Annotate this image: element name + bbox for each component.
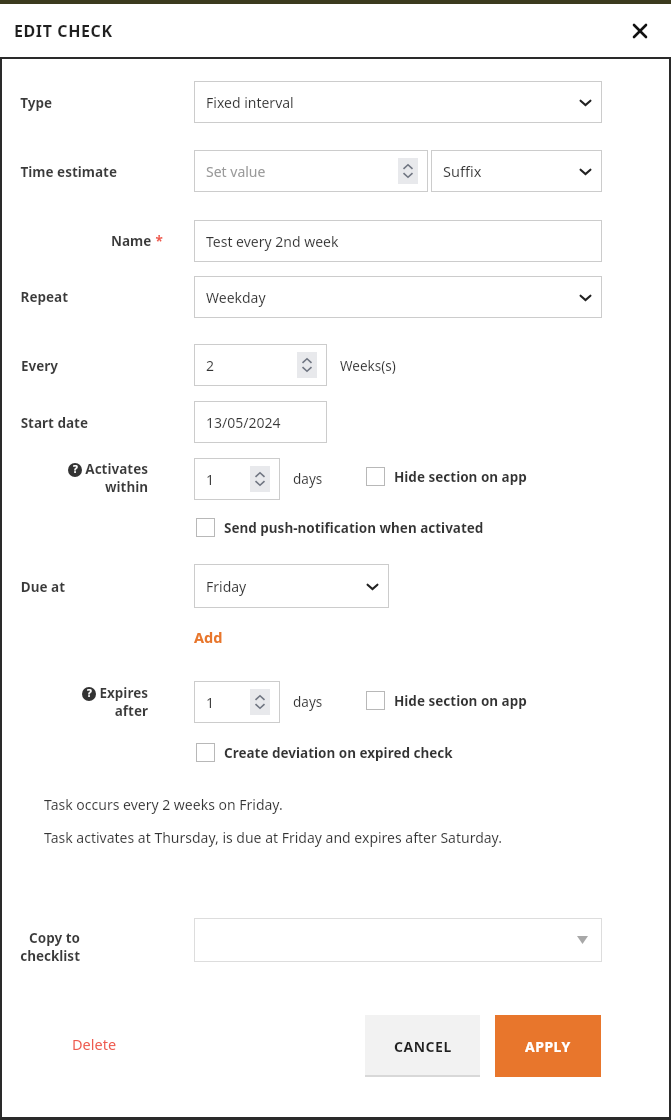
button[interactable]: Friday — [194, 564, 389, 608]
staticText: 13/05/2024 — [206, 413, 281, 432]
button[interactable]: Test every 2nd week — [194, 220, 602, 262]
button[interactable]: 13/05/2024 — [194, 401, 327, 443]
staticText: 1 — [206, 470, 215, 489]
button[interactable]: Fixed interval — [194, 81, 602, 123]
button[interactable] — [194, 918, 602, 962]
staticText: APPLY — [525, 1037, 571, 1056]
staticText: 1 — [206, 693, 215, 712]
button[interactable]: Increment or decrement — [250, 689, 270, 715]
button[interactable]: Hide section on app — [366, 691, 527, 710]
button[interactable]: Increment or decrement — [250, 466, 270, 492]
staticText: Due at — [20, 578, 65, 596]
staticText: Weeks(s) — [340, 357, 396, 375]
button[interactable]: Increment or decrement — [398, 158, 418, 184]
staticText: Name — [111, 232, 152, 250]
staticText: Hide section on app — [394, 692, 527, 710]
staticText: * — [152, 232, 163, 250]
button[interactable]: Add — [194, 627, 223, 647]
staticText: Add — [194, 627, 223, 647]
button[interactable]: Delete — [72, 1034, 117, 1054]
staticText: Copy to checklist — [20, 929, 80, 965]
staticText: Start date — [20, 414, 88, 432]
staticText: days — [293, 693, 323, 711]
button[interactable]: Weekday — [194, 276, 602, 318]
button[interactable]: Help — [68, 463, 82, 477]
staticText: Task activates at Thursday, is due at Fr… — [44, 828, 502, 847]
button[interactable]: Send push-notification when activated — [196, 518, 484, 537]
staticText: Friday — [206, 577, 247, 596]
button[interactable]: Help — [82, 687, 96, 701]
staticText: Create deviation on expired check — [224, 744, 453, 762]
staticText: Delete — [72, 1034, 117, 1054]
staticText: Every — [20, 357, 58, 375]
button[interactable]: Close — [627, 18, 653, 44]
staticText: days — [293, 470, 323, 488]
button[interactable]: Create deviation on expired check — [196, 743, 453, 762]
button[interactable]: CANCEL — [365, 1015, 480, 1077]
button[interactable]: Suffix — [431, 150, 602, 192]
staticText: ? — [73, 462, 78, 476]
staticText: Time estimate — [20, 163, 117, 181]
button[interactable]: 1 — [194, 681, 280, 723]
staticText: Activates within — [85, 460, 148, 496]
staticText: EDIT CHECK — [14, 20, 113, 42]
staticText: Fixed interval — [206, 93, 294, 112]
staticText: Test every 2nd week — [206, 232, 339, 251]
button[interactable]: APPLY — [495, 1015, 601, 1077]
button[interactable]: 2 — [194, 344, 327, 386]
staticText: Send push-notification when activated — [224, 519, 484, 537]
staticText: Repeat — [20, 288, 68, 306]
button[interactable]: Increment or decrement — [297, 352, 317, 378]
staticText: Weekday — [206, 288, 266, 307]
button[interactable]: 1 — [194, 458, 280, 500]
staticText: Hide section on app — [394, 468, 527, 486]
staticText: CANCEL — [394, 1037, 452, 1056]
staticText: Set value — [206, 162, 266, 181]
staticText: Expires after — [99, 684, 148, 720]
staticText: Suffix — [443, 161, 482, 181]
staticText: ? — [87, 686, 92, 700]
staticText: 2 — [206, 356, 215, 375]
staticText: Type — [20, 94, 52, 112]
staticText: Task occurs every 2 weeks on Friday. — [44, 795, 283, 814]
button[interactable]: Set value — [194, 150, 428, 192]
button[interactable]: Hide section on app — [366, 467, 527, 486]
